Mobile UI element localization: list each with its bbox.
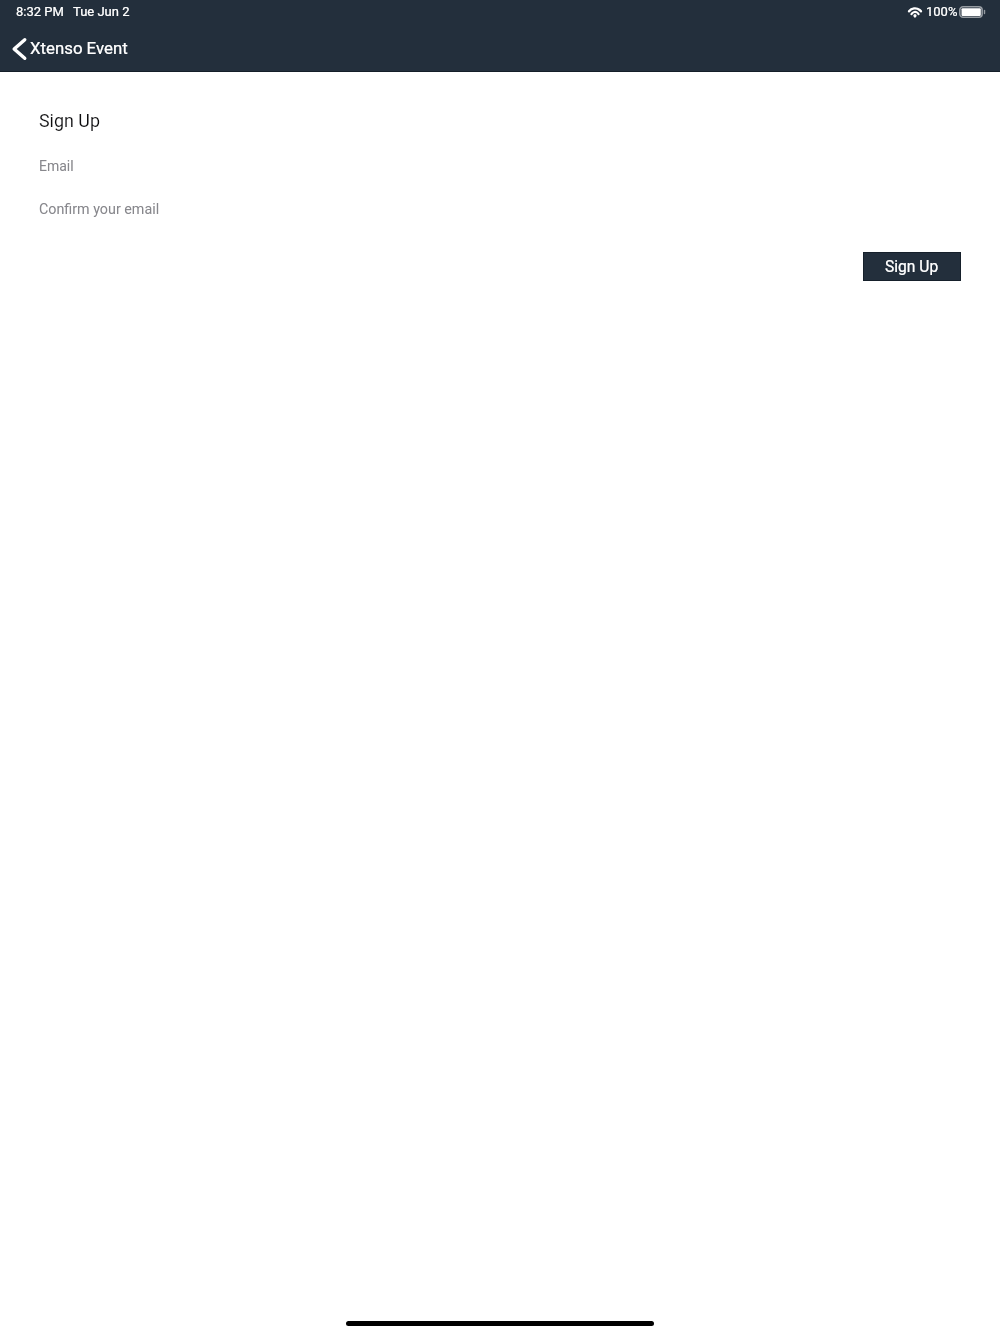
staticText: 100% [926, 4, 958, 19]
staticText: Confirm your email [39, 201, 160, 218]
button[interactable]: Back [6, 30, 142, 70]
staticText: 8:32 PM [16, 4, 64, 19]
other: Back [12, 38, 26, 60]
button[interactable]: Confirm your email [39, 193, 961, 223]
staticText: Tue Jun 2 [73, 4, 130, 19]
staticText: Xtenso Event [30, 38, 128, 58]
staticText: Sign Up [885, 258, 939, 276]
button[interactable]: Email [39, 150, 961, 180]
staticText: Email [39, 158, 74, 174]
button[interactable]: Sign Up [863, 252, 961, 281]
staticText: Sign Up [39, 110, 100, 131]
